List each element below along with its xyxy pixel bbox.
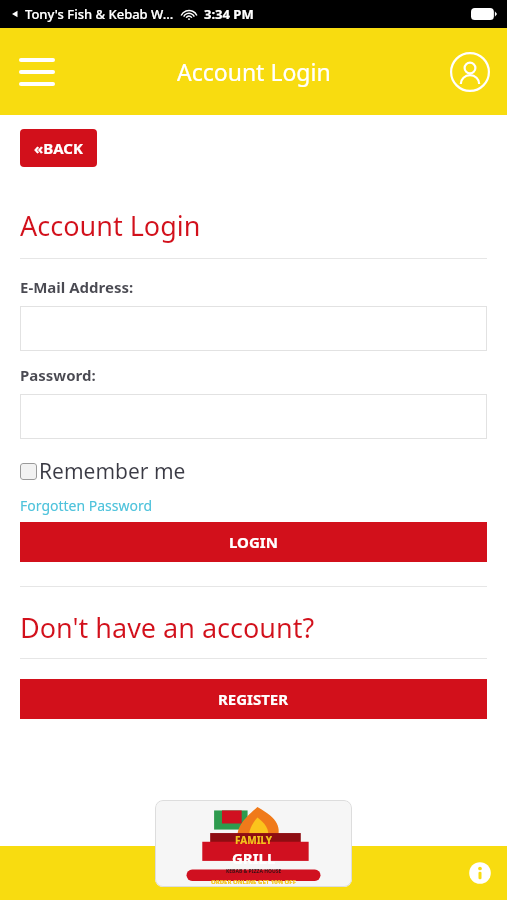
staticText: «BACK bbox=[34, 138, 83, 158]
staticText: KEBAB & PIZZA HOUSE bbox=[226, 868, 282, 875]
staticText: Password: bbox=[20, 365, 96, 385]
staticText: Account Login bbox=[20, 207, 201, 244]
staticText: Don't have an account? bbox=[20, 609, 315, 646]
button[interactable]: FAMILY bbox=[155, 800, 352, 887]
button[interactable] bbox=[20, 394, 487, 439]
button[interactable]: Forgotten Password bbox=[20, 496, 153, 515]
button[interactable]: Menu bbox=[14, 49, 60, 95]
button[interactable] bbox=[20, 306, 487, 351]
staticText: Remember me bbox=[39, 457, 186, 486]
staticText: Forgotten Password bbox=[20, 496, 153, 515]
staticText: Tony's Fish & Kebab W... bbox=[25, 5, 174, 23]
staticText: LOGIN bbox=[229, 532, 278, 552]
staticText: Account Login bbox=[177, 56, 331, 87]
staticText: ORDER ONLINE GET 10% OFF bbox=[211, 878, 296, 886]
staticText: REGISTER bbox=[218, 689, 289, 709]
button[interactable]: «BACK bbox=[20, 129, 97, 167]
staticText: 3:34 PM bbox=[204, 5, 254, 23]
staticText: E-Mail Address: bbox=[20, 277, 134, 297]
staticText: FAMILY bbox=[235, 833, 273, 847]
button[interactable]: Remember me bbox=[20, 457, 186, 486]
staticText: GRILL bbox=[232, 848, 276, 868]
button[interactable]: LOGIN bbox=[20, 522, 487, 562]
button[interactable]: Info bbox=[465, 858, 495, 888]
button[interactable]: REGISTER bbox=[20, 679, 487, 719]
button[interactable]: Account bbox=[447, 49, 493, 95]
